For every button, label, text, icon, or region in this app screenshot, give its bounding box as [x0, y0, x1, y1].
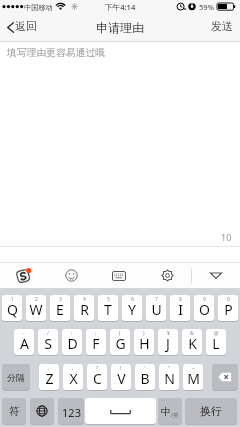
- button[interactable]: 分隔: [2, 364, 30, 390]
- staticText: 59%: [199, 2, 214, 12]
- staticText: !: [120, 365, 122, 372]
- button[interactable]: N: [159, 364, 179, 390]
- staticText: .: [48, 365, 50, 372]
- staticText: 5: [107, 296, 110, 303]
- staticText: 符: [9, 405, 20, 418]
- staticText: G: [115, 334, 126, 353]
- staticText: ,: [72, 365, 74, 372]
- staticText: 0: [227, 296, 230, 303]
- staticText: U: [151, 300, 162, 319]
- staticText: Q: [7, 300, 18, 319]
- button[interactable]: Switch keyboard: [95, 263, 143, 288]
- button[interactable]: 中: [158, 398, 182, 424]
- staticText: O: [199, 300, 210, 319]
- staticText: &: [190, 330, 194, 337]
- button[interactable]: U: [146, 295, 166, 321]
- staticText: I: [178, 300, 183, 319]
- button[interactable]: E: [50, 295, 70, 321]
- staticText: T: [104, 300, 112, 319]
- staticText: ~: [192, 365, 195, 372]
- staticText: /英: [171, 411, 179, 419]
- staticText: 发送: [211, 20, 233, 34]
- staticText: F: [92, 334, 100, 353]
- button[interactable]: A: [14, 329, 34, 355]
- button[interactable]: K: [182, 329, 202, 355]
- button[interactable]: V: [111, 364, 131, 390]
- button[interactable]: [212, 364, 238, 390]
- staticText: 申请理由: [96, 20, 145, 35]
- staticText: 8: [179, 296, 182, 303]
- staticText: 中国移动: [24, 3, 53, 12]
- staticText: L: [212, 334, 220, 353]
- staticText: ;: [95, 330, 97, 337]
- staticText: 7: [155, 296, 158, 303]
- staticText: 2: [35, 296, 38, 303]
- staticText: ¥: [167, 330, 170, 337]
- staticText: Z: [45, 369, 54, 388]
- staticText: ": [168, 365, 171, 372]
- staticText: ': [144, 365, 146, 372]
- staticText: K: [188, 334, 197, 353]
- staticText: M: [187, 369, 200, 388]
- button[interactable]: Hide keyboard: [192, 263, 240, 288]
- staticText: 填写理由更容易通过哦: [7, 47, 105, 59]
- staticText: Y: [128, 300, 136, 319]
- staticText: 4: [83, 296, 86, 303]
- button[interactable]: J: [158, 329, 178, 355]
- button[interactable]: I: [170, 295, 190, 321]
- button[interactable]: W: [26, 295, 46, 321]
- staticText: 10: [221, 231, 232, 243]
- button[interactable]: D: [62, 329, 82, 355]
- button[interactable]: Q: [2, 295, 22, 321]
- button[interactable]: Z: [39, 364, 59, 390]
- button[interactable]: 发送: [198, 13, 240, 41]
- staticText: R: [80, 300, 89, 319]
- button[interactable]: G: [110, 329, 130, 355]
- staticText: W: [29, 300, 43, 319]
- button[interactable]: S: [38, 329, 58, 355]
- button[interactable]: 符: [2, 398, 26, 424]
- button[interactable]: P: [218, 295, 238, 321]
- staticText: 123: [62, 405, 81, 420]
- button[interactable]: H: [134, 329, 154, 355]
- staticText: @: [214, 330, 219, 337]
- staticText: /: [47, 330, 49, 337]
- staticText: 9: [203, 296, 206, 303]
- staticText: (: [119, 330, 121, 337]
- staticText: E: [56, 300, 64, 319]
- staticText: 6: [131, 296, 134, 303]
- button[interactable]: 换行: [185, 398, 237, 424]
- button[interactable]: R: [74, 295, 94, 321]
- button[interactable]: L: [206, 329, 226, 355]
- staticText: P: [224, 300, 233, 319]
- staticText: ?: [96, 365, 99, 372]
- button[interactable]: 返回: [0, 13, 44, 41]
- staticText: -: [23, 330, 25, 337]
- staticText: ): [143, 330, 145, 337]
- staticText: 3: [59, 296, 62, 303]
- button[interactable]: F: [86, 329, 106, 355]
- button[interactable]: [85, 398, 156, 424]
- button[interactable]: Settings: [143, 263, 191, 288]
- button[interactable]: 123: [58, 398, 84, 424]
- staticText: 换行: [200, 404, 222, 418]
- staticText: 返回: [15, 20, 37, 34]
- staticText: J: [166, 334, 170, 353]
- button[interactable]: Y: [122, 295, 142, 321]
- staticText: V: [117, 369, 126, 388]
- button[interactable]: X: [63, 364, 83, 390]
- staticText: 1: [11, 296, 14, 303]
- staticText: B: [140, 369, 150, 388]
- staticText: 中: [161, 405, 171, 418]
- button[interactable]: B: [135, 364, 155, 390]
- staticText: S: [44, 334, 52, 353]
- button[interactable]: T: [98, 295, 118, 321]
- button[interactable]: C: [87, 364, 107, 390]
- button[interactable]: M: [183, 364, 203, 390]
- staticText: N: [164, 369, 175, 388]
- staticText: A: [20, 334, 29, 353]
- button[interactable]: [30, 398, 54, 424]
- button[interactable]: Emoji: [47, 263, 95, 288]
- button[interactable]: O: [194, 295, 214, 321]
- button[interactable]: Sogou input: [0, 263, 47, 288]
